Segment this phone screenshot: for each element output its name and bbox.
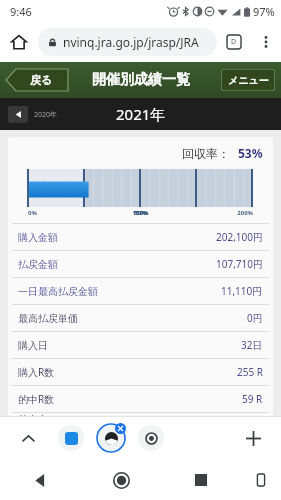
staticText: 255 R	[237, 365, 263, 379]
staticText: 払戻金額	[18, 258, 58, 271]
button[interactable]: New tab	[237, 422, 269, 454]
button[interactable]: 購入R数	[8, 359, 273, 385]
staticText: 202,100円	[216, 230, 263, 244]
button[interactable]: 2020年	[8, 106, 58, 123]
button[interactable]: Rotate	[241, 460, 281, 500]
button[interactable]: 的中率	[8, 413, 273, 416]
button[interactable]: 的中R数	[8, 386, 273, 412]
button[interactable]: Expand	[12, 422, 44, 454]
staticText: 2020年	[34, 110, 58, 120]
button[interactable]: nvinq.jra.go.jp/jrasp/JRA	[38, 28, 217, 56]
button[interactable]: Current app	[98, 425, 124, 451]
staticText: 最高払戻単価	[18, 312, 78, 325]
staticText: 2021年	[116, 104, 166, 124]
staticText: 100%	[118, 209, 163, 217]
staticText: 的中率	[18, 413, 48, 416]
staticText: 50%	[118, 209, 163, 217]
staticText: 59 R	[242, 392, 263, 406]
staticText: D	[231, 37, 237, 47]
staticText: 購入金額	[18, 231, 58, 244]
button[interactable]: More options	[251, 27, 281, 57]
staticText: 32日	[241, 338, 263, 352]
staticText: 的中R数	[18, 392, 55, 406]
button[interactable]: Home	[81, 460, 161, 500]
button[interactable]: App shortcut	[138, 425, 164, 451]
staticText: 11,110円	[221, 284, 263, 298]
staticText: 53%	[238, 145, 263, 161]
button[interactable]: 一日最高払戻金額	[8, 278, 273, 304]
staticText: 開催別成績一覧	[92, 71, 190, 89]
button[interactable]: App shortcut	[58, 425, 84, 451]
staticText: 9:46	[10, 4, 32, 19]
staticText: 200%	[208, 209, 253, 217]
button[interactable]: Recents	[161, 460, 241, 500]
button[interactable]: 最高払戻単価	[8, 305, 273, 331]
button[interactable]: Home	[0, 23, 38, 61]
staticText: 一日最高払戻金額	[18, 285, 98, 298]
button[interactable]: Desktop site	[217, 25, 251, 59]
staticText: nvinq.jra.go.jp/jrasp/JRA	[63, 34, 199, 50]
staticText: 戻る	[30, 73, 53, 87]
button[interactable]: 払戻金額	[8, 251, 273, 277]
button[interactable]: 購入日	[8, 332, 273, 358]
staticText: 回収率：	[182, 146, 230, 161]
staticText: メニュー	[228, 74, 269, 87]
staticText: 購入R数	[18, 365, 55, 379]
button[interactable]: Back	[0, 460, 81, 500]
button[interactable]: 戻る	[6, 69, 68, 91]
staticText: 150%	[118, 209, 163, 217]
staticText: 0%	[28, 209, 73, 217]
staticText: 97%	[253, 4, 275, 19]
button[interactable]: Close	[115, 423, 126, 434]
staticText: 107,710円	[216, 257, 263, 271]
staticText: 0円	[247, 311, 263, 325]
button[interactable]: メニュー	[221, 69, 275, 91]
staticText: 購入日	[18, 339, 48, 352]
button[interactable]: 購入金額	[8, 224, 273, 250]
